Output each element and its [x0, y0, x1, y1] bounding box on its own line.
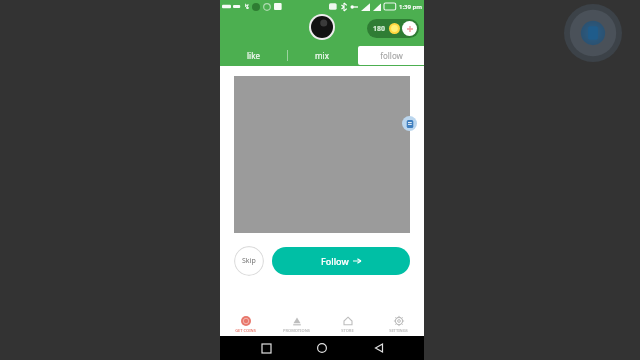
- staticText: mix: [315, 50, 329, 61]
- button[interactable]: like: [220, 45, 287, 66]
- button[interactable]: follow: [358, 46, 424, 65]
- staticText: 180: [373, 24, 386, 34]
- button[interactable]: Recents: [255, 337, 277, 359]
- button[interactable]: Follow: [272, 247, 410, 275]
- button[interactable]: Add coins: [402, 21, 417, 36]
- button[interactable]: PROMOTIONS: [271, 312, 322, 336]
- staticText: STORE: [341, 328, 354, 333]
- staticText: like: [247, 50, 260, 61]
- staticText: 1:39 pm: [399, 3, 422, 11]
- button[interactable]: GET COINS: [220, 312, 271, 336]
- button[interactable]: 180: [367, 19, 419, 38]
- button[interactable]: Instagram profile: [402, 116, 417, 131]
- staticText: SETTINGS: [389, 328, 408, 333]
- staticText: Follow: [321, 255, 349, 267]
- button[interactable]: Profile: [309, 14, 335, 40]
- staticText: GET COINS: [235, 328, 256, 333]
- button[interactable]: Skip: [234, 246, 264, 276]
- button[interactable]: Home: [311, 337, 333, 359]
- button[interactable]: Back: [368, 337, 390, 359]
- staticText: Skip: [242, 256, 256, 266]
- button[interactable]: mix: [288, 45, 356, 66]
- staticText: follow: [380, 50, 403, 61]
- button[interactable]: SETTINGS: [373, 312, 424, 336]
- button[interactable]: STORE: [322, 312, 373, 336]
- staticText: PROMOTIONS: [283, 328, 310, 333]
- staticText: ↯: [244, 3, 250, 11]
- button[interactable]: Post image: [234, 76, 410, 233]
